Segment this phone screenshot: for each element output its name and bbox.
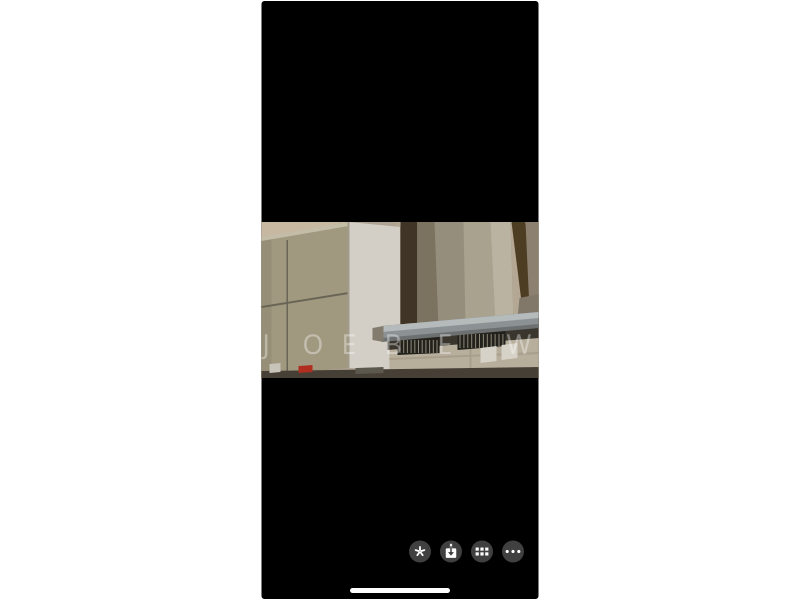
staticText: W (506, 326, 531, 362)
button[interactable]: Enhance (404, 536, 435, 567)
button[interactable]: Grid (466, 536, 497, 567)
staticText: B (384, 326, 401, 362)
button[interactable]: More (497, 536, 528, 567)
button[interactable]: Save (435, 536, 466, 567)
staticText: E (437, 326, 452, 362)
staticText: O (302, 326, 323, 362)
staticText: E (341, 326, 356, 362)
staticText: J (262, 326, 269, 362)
